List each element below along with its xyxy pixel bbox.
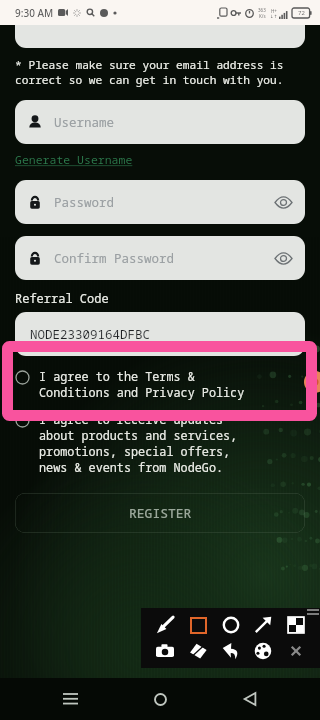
staticText: Referral Code xyxy=(15,290,109,306)
staticText: Confirm Password xyxy=(54,250,175,267)
button[interactable]: Arrow xyxy=(250,612,276,638)
button[interactable]: REGISTER xyxy=(15,493,305,533)
staticText: Generate Username xyxy=(15,152,133,168)
button[interactable]: I agree to the Terms & Conditions and Pr… xyxy=(15,368,305,400)
button[interactable]: Eraser xyxy=(185,638,211,664)
staticText: H+ xyxy=(271,8,277,14)
button[interactable]: Back xyxy=(230,679,270,719)
button[interactable]: NODE23309164DFBC xyxy=(15,312,305,356)
staticText: K/s xyxy=(259,13,266,19)
button[interactable]: Password xyxy=(15,180,305,224)
button[interactable]: Recents xyxy=(50,679,90,719)
button[interactable]: Palette xyxy=(250,638,276,664)
staticText: Password xyxy=(54,194,115,211)
staticText: 72 xyxy=(298,9,305,17)
button[interactable]: Circle xyxy=(218,612,244,638)
staticText: Username xyxy=(54,114,115,131)
button[interactable]: Undo xyxy=(218,638,244,664)
button[interactable]: Brush xyxy=(152,612,178,638)
button[interactable]: I agree to receive updates about product… xyxy=(15,411,305,475)
staticText: 363 xyxy=(258,7,266,13)
staticText: ↓↑ xyxy=(270,14,278,19)
button[interactable]: Confirm Password xyxy=(15,236,305,280)
button[interactable]: Show password xyxy=(273,192,293,212)
button[interactable]: Rectangle xyxy=(185,612,211,638)
staticText: REGISTER xyxy=(129,504,192,522)
staticText: I agree to the Terms & Conditions and Pr… xyxy=(39,368,245,400)
staticText: I agree to receive updates about product… xyxy=(39,411,238,475)
button[interactable]: Generate Username xyxy=(15,152,133,168)
button[interactable]: Username xyxy=(15,100,305,144)
button[interactable]: Camera xyxy=(152,638,178,664)
staticText: 9:30 AM xyxy=(15,6,54,20)
button[interactable]: Mosaic xyxy=(283,612,309,638)
staticText: NODE23309164DFBC xyxy=(30,326,151,343)
button[interactable]: Home xyxy=(140,679,180,719)
button[interactable]: Show password xyxy=(273,248,293,268)
staticText: * Please make sure your email address is… xyxy=(15,57,305,87)
button[interactable] xyxy=(15,25,305,48)
button[interactable]: Close xyxy=(283,638,309,664)
